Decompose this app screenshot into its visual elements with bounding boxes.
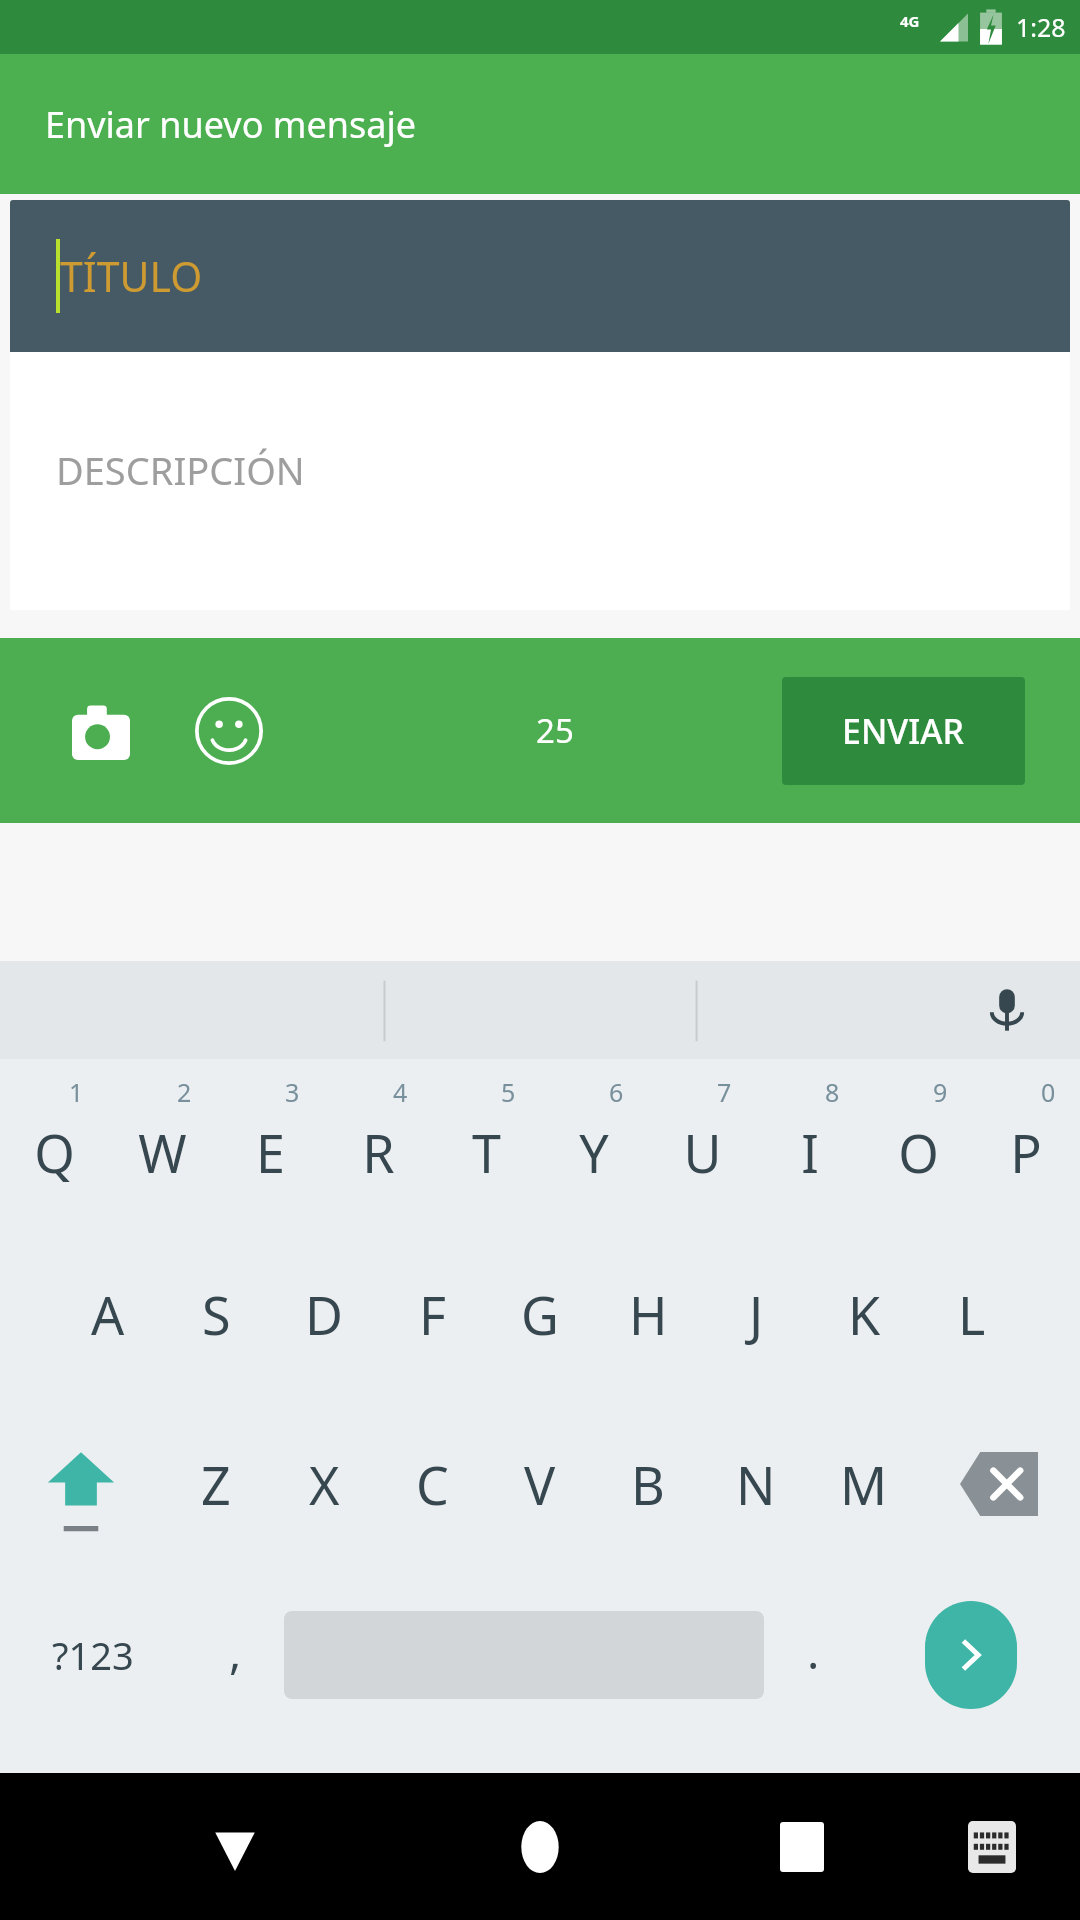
button[interactable]: Mayúsculas xyxy=(0,1399,162,1569)
button[interactable]: T xyxy=(432,1059,540,1229)
button[interactable]: Q xyxy=(0,1059,108,1229)
button[interactable]: L xyxy=(918,1229,1026,1399)
staticText: C xyxy=(416,1449,449,1520)
staticText: W xyxy=(138,1117,187,1188)
button[interactable]: . xyxy=(764,1569,862,1741)
staticText: N xyxy=(736,1449,776,1520)
button[interactable]: M xyxy=(810,1399,918,1569)
staticText: 1 xyxy=(69,1075,84,1109)
button[interactable]: Entrada de voz xyxy=(964,967,1050,1053)
staticText: 2 xyxy=(177,1075,192,1109)
staticText: L xyxy=(958,1279,986,1350)
button[interactable]: G xyxy=(486,1229,594,1399)
staticText: J xyxy=(749,1279,764,1350)
staticText: Enviar nuevo mensaje xyxy=(45,100,417,149)
button[interactable]: Borrar xyxy=(918,1399,1080,1569)
button[interactable]: H xyxy=(594,1229,702,1399)
button[interactable]: D xyxy=(270,1229,378,1399)
staticText: . xyxy=(807,1620,820,1683)
button[interactable]: V xyxy=(486,1399,594,1569)
staticText: M xyxy=(840,1449,888,1520)
staticText: 6 xyxy=(609,1075,624,1109)
staticText: 25 xyxy=(536,708,574,753)
button[interactable]: DESCRIPCIÓN xyxy=(10,352,1070,610)
staticText: 3 xyxy=(285,1075,300,1109)
staticText: H xyxy=(629,1279,668,1350)
staticText: G xyxy=(521,1279,559,1350)
staticText: 4 xyxy=(393,1075,408,1109)
button[interactable]: Emoji xyxy=(188,690,270,772)
staticText: T xyxy=(472,1117,501,1188)
staticText: X xyxy=(309,1449,340,1520)
staticText: ?123 xyxy=(52,1629,134,1681)
button[interactable]: U xyxy=(648,1059,756,1229)
button[interactable]: Enter xyxy=(925,1601,1017,1709)
button[interactable]: Recientes xyxy=(752,1797,852,1897)
button[interactable]: Atrás xyxy=(185,1797,285,1897)
button[interactable]: B xyxy=(594,1399,702,1569)
button[interactable]: , xyxy=(186,1569,284,1741)
staticText: R xyxy=(362,1117,395,1188)
staticText: O xyxy=(898,1117,939,1188)
button[interactable]: Adjuntar foto xyxy=(62,692,140,770)
staticText: TÍTULO xyxy=(60,248,203,304)
button[interactable]: ?123 xyxy=(0,1569,186,1741)
button[interactable]: Y xyxy=(540,1059,648,1229)
staticText: A xyxy=(91,1279,125,1350)
button[interactable]: O xyxy=(864,1059,972,1229)
button[interactable]: N xyxy=(702,1399,810,1569)
staticText: 1:28 xyxy=(1016,10,1066,44)
staticText: D xyxy=(305,1279,343,1350)
staticText: S xyxy=(202,1279,231,1350)
staticText: B xyxy=(631,1449,665,1520)
button[interactable]: ENVIAR xyxy=(782,677,1025,785)
button[interactable]: S xyxy=(162,1229,270,1399)
button[interactable]: Cambiar teclado xyxy=(952,1807,1032,1887)
staticText: V xyxy=(524,1449,556,1520)
staticText: , xyxy=(229,1620,242,1683)
staticText: K xyxy=(848,1279,881,1350)
staticText: 9 xyxy=(933,1075,948,1109)
button[interactable]: TÍTULO xyxy=(10,200,1070,352)
button[interactable]: E xyxy=(216,1059,324,1229)
staticText: P xyxy=(1010,1117,1042,1188)
button[interactable]: R xyxy=(324,1059,432,1229)
staticText: Q xyxy=(34,1117,75,1188)
button[interactable]: W xyxy=(108,1059,216,1229)
button[interactable]: X xyxy=(270,1399,378,1569)
staticText: E xyxy=(256,1117,285,1188)
staticText: 0 xyxy=(1041,1075,1056,1109)
staticText: 5 xyxy=(501,1075,516,1109)
staticText: Y xyxy=(579,1117,609,1188)
button[interactable]: I xyxy=(756,1059,864,1229)
button[interactable]: J xyxy=(702,1229,810,1399)
staticText: 4G xyxy=(900,11,920,31)
staticText: U xyxy=(683,1117,722,1188)
staticText: I xyxy=(801,1117,819,1188)
button[interactable]: K xyxy=(810,1229,918,1399)
button[interactable]: Inicio xyxy=(490,1797,590,1897)
button[interactable]: A xyxy=(54,1229,162,1399)
button[interactable]: P xyxy=(972,1059,1080,1229)
staticText: F xyxy=(419,1279,446,1350)
staticText: 7 xyxy=(717,1075,732,1109)
staticText: 8 xyxy=(825,1075,840,1109)
button[interactable]: C xyxy=(378,1399,486,1569)
staticText: ENVIAR xyxy=(842,708,965,754)
staticText: DESCRIPCIÓN xyxy=(56,444,305,496)
staticText: Z xyxy=(201,1449,231,1520)
button[interactable]: Z xyxy=(162,1399,270,1569)
button[interactable]: F xyxy=(378,1229,486,1399)
